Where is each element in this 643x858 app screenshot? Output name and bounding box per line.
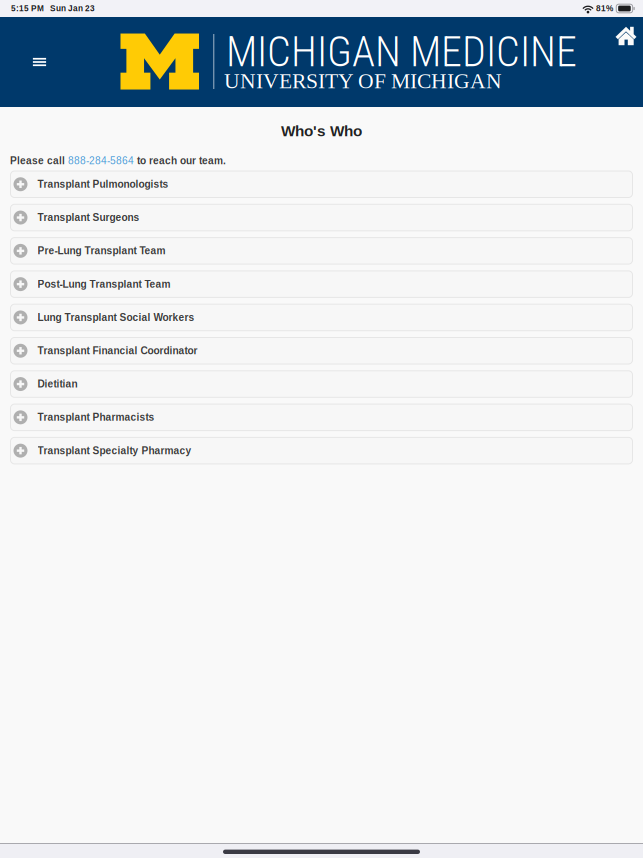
button[interactable]: Transplant Surgeons: [10, 204, 632, 231]
staticText: UNIVERSITY OF MICHIGAN: [224, 69, 502, 93]
button[interactable]: Transplant Financial Coordinator: [10, 337, 632, 364]
button[interactable]: Post-Lung Transplant Team: [10, 271, 632, 297]
staticText: 81%: [596, 4, 613, 13]
staticText: Dietitian: [37, 378, 77, 390]
staticText: Transplant Specialty Pharmacy: [37, 445, 191, 456]
button[interactable]: Menu: [17, 40, 61, 84]
staticText: Please call: [10, 155, 68, 166]
staticText: Who's Who: [281, 122, 362, 139]
staticText: Transplant Surgeons: [37, 212, 139, 223]
button[interactable]: Home: [609, 22, 643, 50]
button[interactable]: Dietitian: [10, 371, 632, 397]
button[interactable]: Pre-Lung Transplant Team: [10, 238, 632, 264]
button[interactable]: Transplant Pharmacists: [10, 404, 632, 431]
staticText: Post-Lung Transplant Team: [37, 278, 170, 290]
staticText: Transplant Pharmacists: [37, 412, 154, 423]
staticText: 888-284-5864: [68, 155, 134, 166]
button[interactable]: Transplant Specialty Pharmacy: [10, 437, 632, 464]
button[interactable]: 888-284-5864: [68, 155, 134, 166]
staticText: MICHIGAN MEDICINE: [226, 27, 577, 77]
button[interactable]: Lung Transplant Social Workers: [10, 304, 632, 331]
staticText: 5:15 PM: [11, 4, 44, 13]
staticText: Pre-Lung Transplant Team: [37, 245, 165, 256]
button[interactable]: Transplant Pulmonologists: [10, 171, 632, 197]
staticText: Transplant Financial Coordinator: [37, 345, 197, 356]
staticText: Transplant Pulmonologists: [37, 179, 168, 190]
staticText: Lung Transplant Social Workers: [37, 312, 194, 323]
staticText: Sun Jan 23: [44, 4, 95, 13]
staticText: to reach our team.: [134, 155, 226, 166]
